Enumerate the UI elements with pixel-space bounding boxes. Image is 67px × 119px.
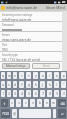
button[interactable]: t [26,72,31,79]
staticText: 1 [2,92,4,96]
button[interactable]: u [40,72,45,79]
staticText: v [32,101,34,105]
button[interactable]: ' [61,81,66,88]
button[interactable]: Backspace [58,99,66,107]
staticText: p [63,74,65,78]
staticText: q [2,74,4,78]
staticText: b [39,101,41,105]
button[interactable]: d [13,81,17,88]
button[interactable]: v [30,99,35,107]
staticText: Password [2,23,14,27]
staticText: . [54,112,55,116]
button[interactable]: f [19,81,24,88]
button[interactable]: @ [12,109,17,118]
staticText: @ [13,112,16,116]
button[interactable]: . [53,109,56,118]
staticText: z [11,101,13,105]
button[interactable]: Port [0,42,62,52]
button[interactable]: Manual setup [2,63,30,69]
button[interactable]: Next [32,63,60,69]
staticText: Next [43,64,50,68]
button[interactable]: Server [0,32,62,42]
button[interactable]: Password [0,22,62,32]
button[interactable]: c [23,99,28,107]
button[interactable]: Enter [58,109,66,118]
button[interactable]: s [7,81,11,88]
button[interactable]: m [51,99,56,107]
button[interactable]: z [10,99,14,107]
button[interactable]: l [54,81,59,88]
staticText: e [14,74,16,78]
staticText: n [46,101,48,105]
button[interactable]: w [7,72,11,79]
button[interactable]: p [61,72,66,79]
staticText: imap.nano-ware.de [2,38,32,42]
staticText: ⌫ [60,102,65,105]
staticText: w [8,74,11,78]
button[interactable]: 2 [7,90,11,97]
button[interactable]: Security type [0,52,62,62]
button[interactable]: 5 [26,90,31,97]
button[interactable]: n [44,99,49,107]
staticText: 993 [2,48,8,52]
staticText: 0 [63,92,65,96]
button[interactable]: 0 [61,90,66,97]
staticText: s [8,83,10,87]
staticText: t [28,74,30,78]
button[interactable]: j [40,81,45,88]
staticText: 7 [42,92,44,96]
staticText: ↵ [61,112,64,115]
button[interactable]: Incoming server settings [0,12,62,22]
button[interactable]: 7 [40,90,45,97]
staticText: 2 [8,92,10,96]
staticText: g [28,83,30,87]
staticText: ' [63,83,64,87]
staticText: 3 [14,92,16,96]
button[interactable]: 1 [1,90,5,97]
button[interactable]: ?123 [1,109,10,118]
button[interactable]: o [54,72,59,79]
staticText: 5 [28,92,30,96]
button[interactable]: e [13,72,17,79]
staticText: 4 [21,92,23,96]
staticText: y [35,74,37,78]
button[interactable]: k [47,81,52,88]
button[interactable]: a [1,81,5,88]
button[interactable]: 4 [19,90,24,97]
staticText: Server [2,33,10,37]
button[interactable]: Never Mind [45,5,66,10]
button[interactable]: b [37,99,42,107]
staticText: i [49,74,50,78]
button[interactable]: r [19,72,24,79]
button[interactable]: 6 [33,90,38,97]
button[interactable]: q [1,72,5,79]
button[interactable]: h [33,81,38,88]
button[interactable]: 9 [54,90,59,97]
staticText: SSL / TLS (accept all certs) [2,58,41,62]
button[interactable]: g [26,81,31,88]
button[interactable]: Account icon [1,6,5,10]
staticText: ?123 [2,112,9,116]
button[interactable]: i [47,72,52,79]
button[interactable]: Shift [1,99,8,107]
staticText: 8 [49,92,51,96]
staticText: Manual setup [6,64,26,68]
staticText: Security type [2,53,18,57]
staticText: 6 [35,92,37,96]
staticText: info@nano-ware.de [2,18,32,22]
staticText: k [49,83,51,87]
staticText: f [21,83,23,87]
button[interactable]: 8 [47,90,52,97]
staticText: ⇧ [3,102,6,105]
staticText: a [2,83,4,87]
staticText: u [42,74,44,78]
staticText: j [42,83,43,87]
button[interactable]: x [16,99,21,107]
button[interactable]: 3 [13,90,17,97]
staticText: h [35,83,37,87]
button[interactable]: y [33,72,38,79]
staticText: x [18,101,20,105]
staticText: c [25,101,27,105]
staticText: o [56,74,58,78]
